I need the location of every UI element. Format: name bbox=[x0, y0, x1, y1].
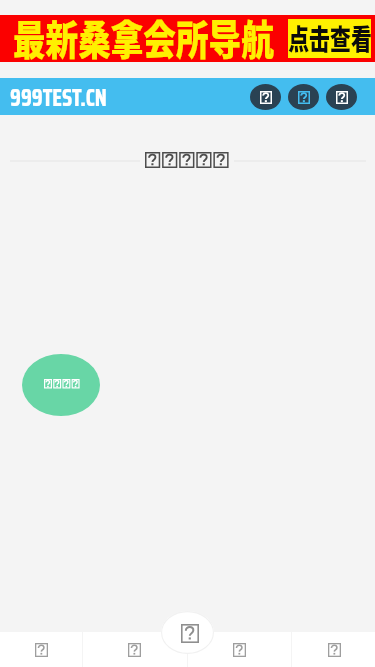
button[interactable]: Nav tab 4 bbox=[308, 632, 360, 667]
button[interactable] bbox=[22, 354, 100, 416]
button[interactable]: 最新桑拿会所导航 bbox=[0, 15, 375, 62]
staticText: 点击查看 bbox=[288, 18, 372, 58]
button[interactable]: Nav tab 2 bbox=[108, 632, 160, 667]
button[interactable]: Toolbar action 1 bbox=[250, 84, 281, 110]
button[interactable]: Add bbox=[161, 611, 214, 654]
button[interactable]: Toolbar action 2 bbox=[288, 84, 319, 110]
staticText: 999TEST.CN bbox=[10, 78, 107, 116]
button[interactable]: Toolbar action 3 bbox=[326, 84, 357, 110]
button[interactable]: 点击查看 bbox=[288, 19, 371, 58]
button[interactable]: Nav tab 1 bbox=[15, 632, 67, 667]
button[interactable]: Nav tab 3 bbox=[213, 632, 265, 667]
staticText: 最新桑拿会所导航 bbox=[13, 7, 274, 66]
